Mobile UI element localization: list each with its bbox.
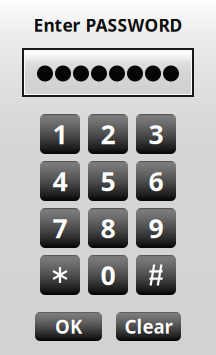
staticText: 0 (100, 257, 115, 293)
staticText: 9 (148, 210, 163, 246)
staticText: OK (55, 314, 82, 339)
button[interactable]: 7 (40, 208, 80, 248)
button[interactable]: 4 (40, 161, 80, 201)
button[interactable]: 8 (88, 208, 128, 248)
button[interactable]: 3 (136, 114, 176, 154)
button[interactable]: 2 (88, 114, 128, 154)
staticText: 6 (148, 163, 163, 199)
button[interactable]: OK (35, 312, 102, 341)
button[interactable]: Pound (136, 255, 176, 295)
staticText: 4 (52, 163, 67, 199)
button[interactable]: 6 (136, 161, 176, 201)
button[interactable]: Clear (116, 312, 181, 341)
button[interactable]: Star (40, 255, 80, 295)
button[interactable]: 9 (136, 208, 176, 248)
staticText: Clear (124, 314, 172, 339)
button[interactable]: 1 (40, 114, 80, 154)
staticText: 3 (148, 116, 163, 152)
staticText: 5 (100, 163, 115, 199)
button[interactable]: 0 (88, 255, 128, 295)
button[interactable]: 5 (88, 161, 128, 201)
staticText: Enter PASSWORD (33, 13, 182, 36)
staticText: 2 (100, 116, 115, 152)
staticText: 1 (52, 116, 67, 152)
staticText: 7 (52, 210, 67, 246)
staticText: 8 (100, 210, 115, 246)
